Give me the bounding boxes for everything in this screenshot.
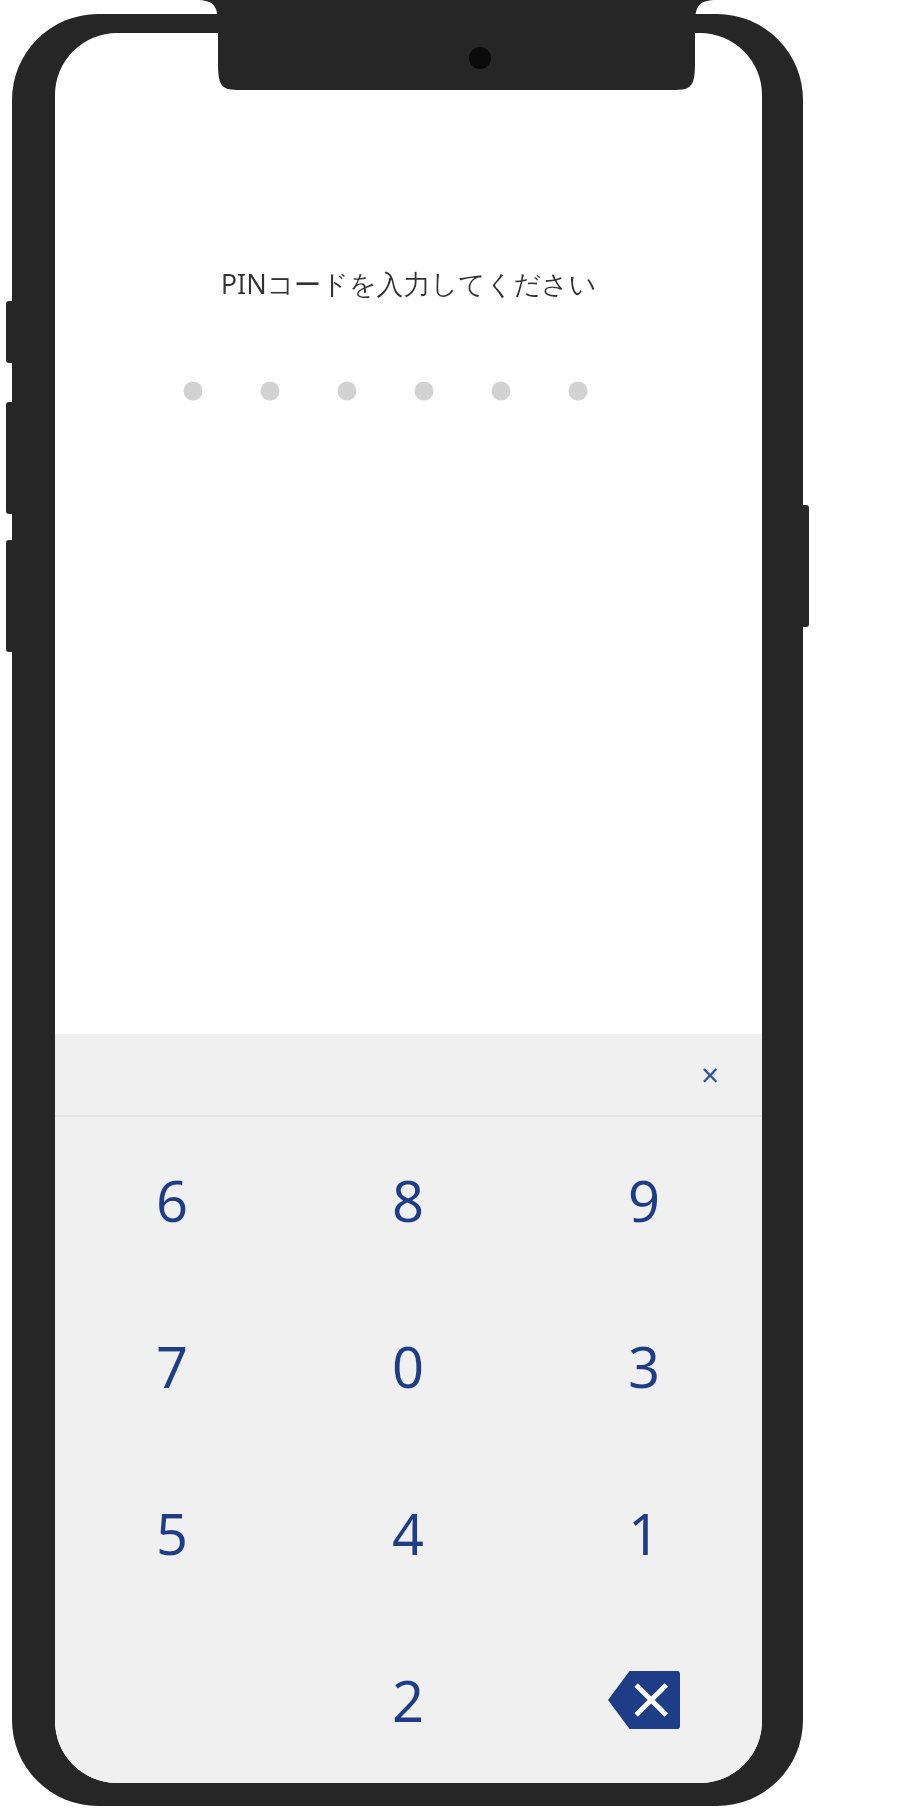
staticText: 2	[392, 1662, 425, 1738]
staticText: 8	[392, 1162, 425, 1238]
staticText: 5	[156, 1495, 189, 1571]
staticText: 7	[156, 1328, 189, 1404]
staticText: 0	[392, 1328, 425, 1404]
button[interactable]: 8	[290, 1117, 526, 1283]
staticText: 6	[156, 1162, 189, 1238]
button[interactable]: 2	[290, 1616, 526, 1783]
button[interactable]: 5	[55, 1449, 290, 1616]
staticText: ×	[701, 1053, 720, 1097]
button[interactable]: 6	[55, 1117, 290, 1283]
staticText: 1	[628, 1495, 661, 1571]
button[interactable]: Close keypad	[680, 1045, 740, 1105]
button[interactable]: 7	[55, 1283, 290, 1449]
button[interactable]: 0	[290, 1283, 526, 1449]
staticText: PINコードを入力してください	[55, 265, 762, 302]
button[interactable]: 1	[526, 1449, 762, 1616]
staticText: 4	[392, 1495, 425, 1571]
button[interactable]: 9	[526, 1117, 762, 1283]
staticText: 9	[628, 1162, 661, 1238]
staticText: 3	[628, 1328, 661, 1404]
button[interactable]: 4	[290, 1449, 526, 1616]
button[interactable]: Backspace	[526, 1616, 762, 1783]
button[interactable]: 3	[526, 1283, 762, 1449]
